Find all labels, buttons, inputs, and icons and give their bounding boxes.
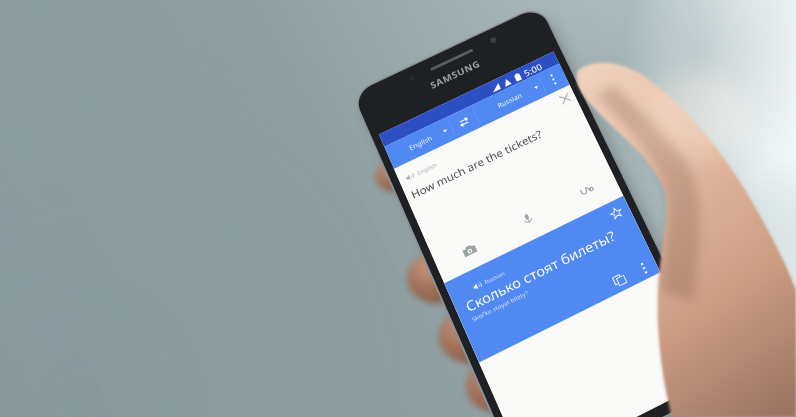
- button[interactable]: English: [0, 84, 382, 232]
- staticText: How much are the tickets?: [30, 382, 796, 417]
- button[interactable]: Russian: [534, 84, 796, 232]
- button[interactable]: Swap languages: [382, 84, 534, 232]
- staticText: Russian: [666, 131, 796, 185]
